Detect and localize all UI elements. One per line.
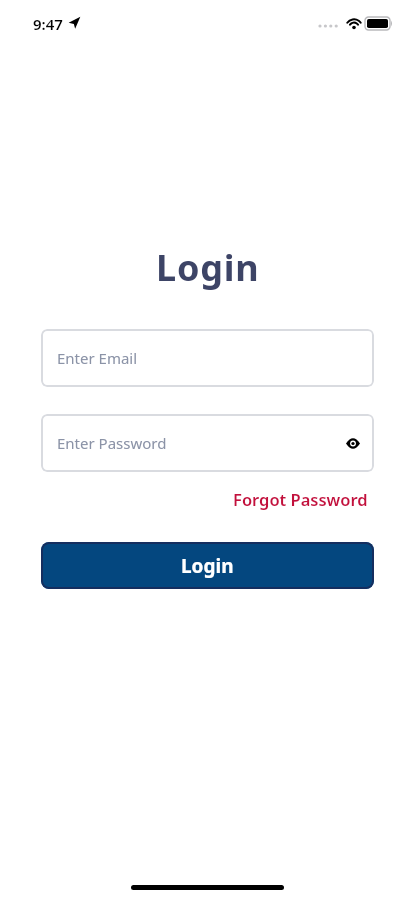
button[interactable]: Enter Email bbox=[41, 329, 374, 387]
button[interactable]: Forgot Password bbox=[233, 488, 368, 510]
staticText: Enter Password bbox=[57, 433, 167, 453]
staticText: 9:47 bbox=[33, 14, 63, 34]
button[interactable]: Enter Password bbox=[41, 414, 374, 472]
button[interactable]: Login bbox=[41, 542, 374, 589]
staticText: Login bbox=[156, 243, 260, 292]
staticText: Enter Email bbox=[57, 348, 138, 368]
staticText: Login bbox=[181, 553, 234, 579]
staticText: Forgot Password bbox=[233, 488, 368, 510]
